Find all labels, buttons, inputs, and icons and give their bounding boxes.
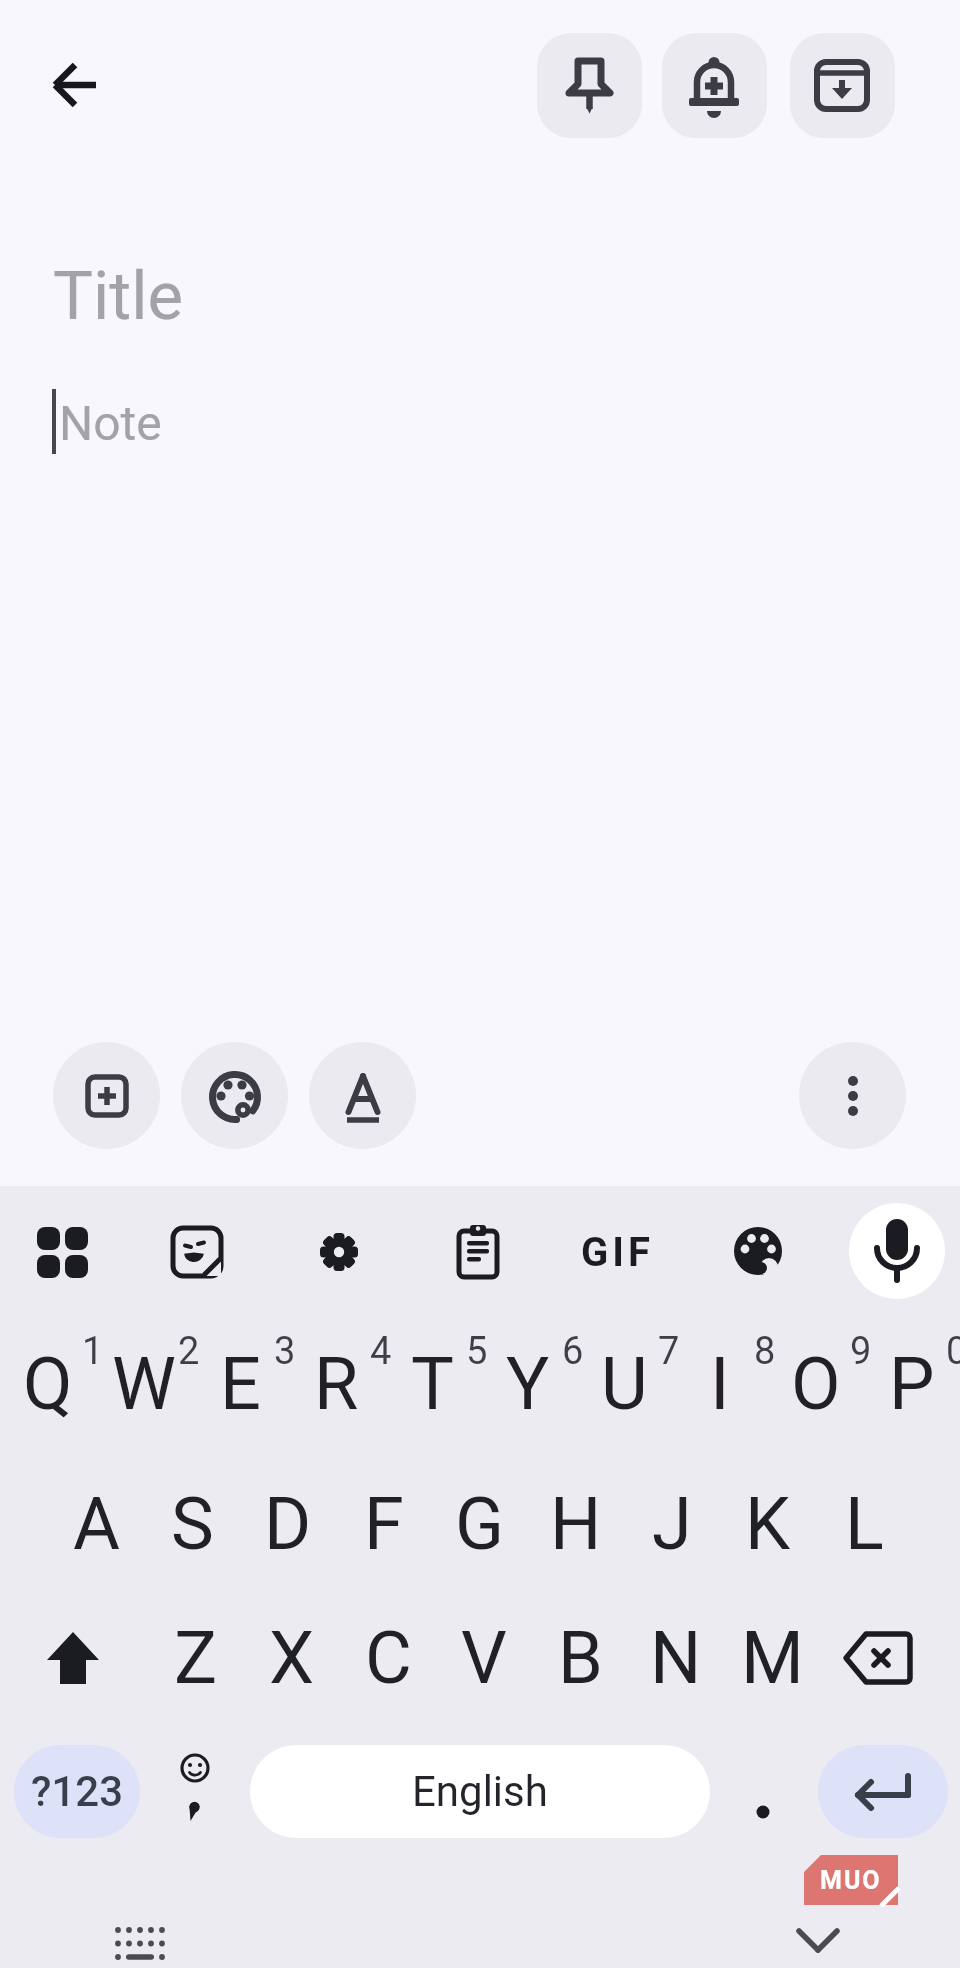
staticText: 2 xyxy=(178,1329,200,1369)
staticText: H xyxy=(550,1482,602,1566)
button[interactable]: English xyxy=(250,1745,710,1838)
button[interactable]: G xyxy=(432,1469,528,1579)
staticText: I xyxy=(710,1342,730,1426)
staticText: X xyxy=(269,1616,315,1700)
button[interactable] xyxy=(790,33,895,138)
staticText: MUO xyxy=(820,1866,882,1895)
staticText: 7 xyxy=(658,1329,680,1369)
button[interactable]: N xyxy=(628,1603,724,1713)
button[interactable]: A xyxy=(48,1469,144,1579)
staticText: F xyxy=(364,1482,404,1566)
staticText: 3 xyxy=(274,1329,296,1369)
button[interactable] xyxy=(40,50,110,120)
button[interactable]: I xyxy=(672,1329,768,1439)
button[interactable]: M xyxy=(724,1603,820,1713)
button[interactable] xyxy=(818,1745,948,1838)
staticText: A xyxy=(73,1482,120,1566)
button[interactable] xyxy=(0,1603,144,1713)
staticText: T xyxy=(411,1342,454,1426)
staticText: D xyxy=(264,1482,312,1566)
button[interactable] xyxy=(728,1222,788,1282)
button[interactable] xyxy=(309,1042,416,1149)
button[interactable]: W xyxy=(96,1329,192,1439)
staticText: W xyxy=(112,1342,176,1426)
button[interactable] xyxy=(849,1203,945,1299)
staticText: Note xyxy=(59,395,162,451)
staticText: 9 xyxy=(850,1329,872,1369)
staticText: M xyxy=(741,1616,804,1700)
staticText: C xyxy=(365,1616,412,1700)
staticText: Title xyxy=(53,257,184,336)
button[interactable]: K xyxy=(720,1469,816,1579)
staticText: 8 xyxy=(754,1329,776,1369)
staticText: J xyxy=(652,1482,692,1566)
staticText: Q xyxy=(23,1342,73,1426)
staticText: 5 xyxy=(466,1329,488,1369)
staticText: R xyxy=(314,1342,359,1426)
staticText: S xyxy=(171,1482,214,1566)
button[interactable]: L xyxy=(816,1469,912,1579)
staticText: Z xyxy=(174,1616,218,1700)
button[interactable]: J xyxy=(624,1469,720,1579)
button[interactable] xyxy=(714,1745,810,1838)
staticText: GIF xyxy=(581,1229,654,1276)
button[interactable] xyxy=(34,1224,90,1280)
button[interactable] xyxy=(662,33,767,138)
staticText: English xyxy=(412,1767,548,1816)
button[interactable]: C xyxy=(340,1603,436,1713)
button[interactable]: X xyxy=(244,1603,340,1713)
button[interactable]: Z xyxy=(148,1603,244,1713)
staticText: U xyxy=(601,1342,648,1426)
staticText: Y xyxy=(506,1342,550,1426)
button[interactable] xyxy=(450,1222,506,1282)
staticText: 6 xyxy=(562,1329,584,1369)
staticText: 1 xyxy=(82,1329,104,1369)
staticText: K xyxy=(745,1482,791,1566)
button[interactable] xyxy=(537,33,642,138)
button[interactable]: P xyxy=(864,1329,960,1439)
staticText: O xyxy=(791,1342,841,1426)
button[interactable] xyxy=(147,1745,243,1838)
button[interactable]: S xyxy=(144,1469,240,1579)
button[interactable] xyxy=(181,1042,288,1149)
button[interactable] xyxy=(169,1224,225,1280)
staticText: E xyxy=(220,1342,261,1426)
button[interactable] xyxy=(796,1924,840,1960)
button[interactable]: H xyxy=(528,1469,624,1579)
button[interactable] xyxy=(799,1042,906,1149)
button[interactable] xyxy=(311,1224,367,1280)
button[interactable]: B xyxy=(532,1603,628,1713)
button[interactable]: O xyxy=(768,1329,864,1439)
button[interactable]: R xyxy=(288,1329,384,1439)
button[interactable] xyxy=(53,1042,160,1149)
button[interactable]: V xyxy=(436,1603,532,1713)
button[interactable]: Y xyxy=(480,1329,576,1439)
staticText: G xyxy=(455,1482,505,1566)
button[interactable]: ?123 xyxy=(14,1745,140,1838)
button[interactable]: GIF xyxy=(569,1224,665,1280)
button[interactable]: E xyxy=(192,1329,288,1439)
staticText: N xyxy=(650,1616,702,1700)
staticText: V xyxy=(461,1616,507,1700)
button[interactable]: D xyxy=(240,1469,336,1579)
button[interactable] xyxy=(111,1918,169,1962)
staticText: L xyxy=(845,1482,884,1566)
button[interactable]: F xyxy=(336,1469,432,1579)
staticText: 0 xyxy=(946,1329,960,1369)
staticText: B xyxy=(558,1616,603,1700)
button[interactable] xyxy=(806,1603,950,1713)
button[interactable]: U xyxy=(576,1329,672,1439)
button[interactable]: Q xyxy=(0,1329,96,1439)
staticText: P xyxy=(889,1342,935,1426)
staticText: 4 xyxy=(370,1329,392,1369)
button[interactable]: T xyxy=(384,1329,480,1439)
staticText: ?123 xyxy=(31,1767,124,1816)
